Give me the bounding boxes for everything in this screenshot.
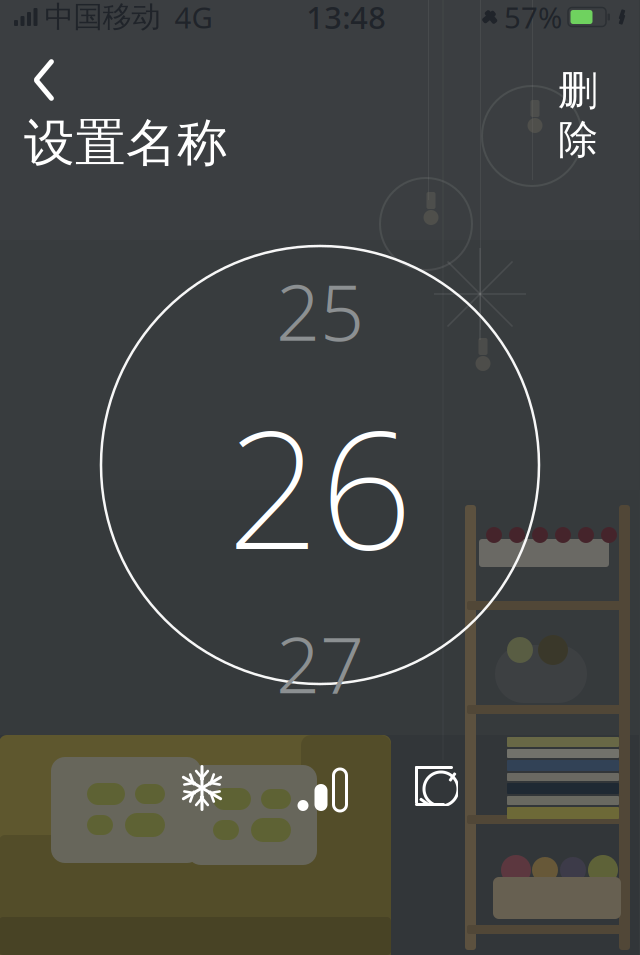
staticText: 27 bbox=[276, 612, 364, 715]
staticText: 25 bbox=[276, 259, 364, 362]
staticText: 设置名称 bbox=[24, 112, 228, 174]
staticText: 13:48 bbox=[306, 0, 386, 37]
button[interactable]: 返回 bbox=[14, 50, 74, 110]
button[interactable]: 删除 bbox=[544, 54, 612, 176]
staticText: 57% bbox=[504, 0, 562, 36]
staticText: 删除 bbox=[558, 66, 598, 164]
staticText: 26 bbox=[227, 378, 413, 594]
staticText: 中国移动 bbox=[44, 0, 160, 35]
button[interactable]: 风速 bbox=[290, 756, 354, 820]
button[interactable]: 制冷模式 bbox=[170, 756, 234, 820]
button[interactable]: 扫风 bbox=[406, 756, 470, 820]
staticText: 4G bbox=[174, 0, 212, 36]
